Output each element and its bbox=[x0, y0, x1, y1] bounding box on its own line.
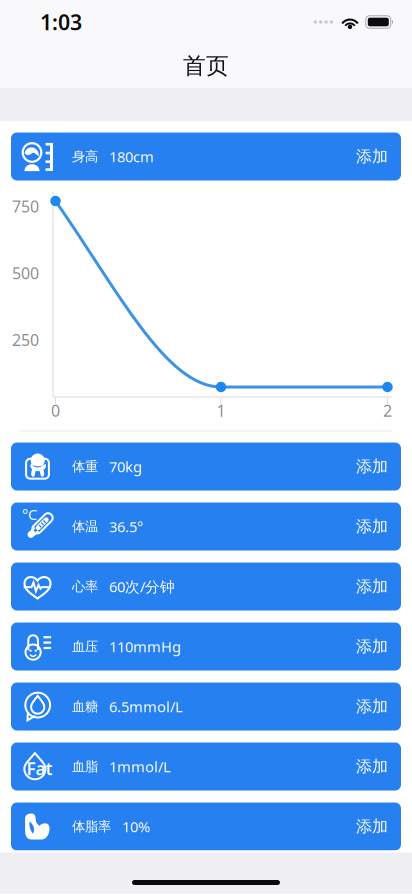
staticText: 身高 bbox=[72, 148, 98, 165]
staticText: 血脂 bbox=[72, 758, 98, 775]
staticText: 心率 bbox=[72, 578, 98, 595]
button[interactable]: °C bbox=[11, 502, 401, 550]
staticText: 10% bbox=[122, 817, 150, 836]
staticText: 血糖 bbox=[72, 698, 98, 715]
staticText: 1 bbox=[216, 400, 225, 421]
button[interactable]: 心率 bbox=[11, 562, 401, 610]
staticText: 110mmHg bbox=[109, 637, 181, 656]
staticText: 添加 bbox=[356, 577, 388, 596]
button[interactable]: 血糖 bbox=[11, 682, 401, 730]
staticText: 1:03 bbox=[40, 8, 82, 36]
button[interactable]: Fat bbox=[11, 742, 401, 790]
staticText: 体脂率 bbox=[72, 818, 111, 835]
staticText: 体重 bbox=[72, 458, 98, 475]
staticText: 体温 bbox=[72, 518, 98, 535]
staticText: 添加 bbox=[356, 697, 388, 716]
staticText: Fat bbox=[26, 757, 52, 780]
button[interactable]: 身高 bbox=[11, 132, 401, 180]
staticText: 70kg bbox=[109, 457, 142, 476]
button[interactable]: 体重 bbox=[11, 442, 401, 490]
staticText: 500 bbox=[12, 262, 39, 284]
staticText: 60次/分钟 bbox=[109, 577, 175, 596]
staticText: 添加 bbox=[356, 457, 388, 476]
staticText: 750 bbox=[12, 196, 39, 217]
staticText: 添加 bbox=[356, 757, 388, 776]
staticText: 0 bbox=[51, 400, 60, 421]
staticText: 添加 bbox=[356, 517, 388, 536]
staticText: 首页 bbox=[183, 52, 229, 80]
staticText: 6.5mmol/L bbox=[109, 697, 183, 716]
staticText: 180cm bbox=[109, 147, 154, 166]
staticText: 1mmol/L bbox=[109, 757, 171, 776]
staticText: 36.5° bbox=[109, 517, 143, 536]
button[interactable]: 血压 bbox=[11, 622, 401, 670]
staticText: 添加 bbox=[356, 817, 388, 836]
staticText: 250 bbox=[12, 329, 39, 350]
staticText: 2 bbox=[383, 400, 392, 421]
button[interactable]: 体脂率 bbox=[11, 802, 401, 850]
staticText: 添加 bbox=[356, 637, 388, 656]
staticText: 血压 bbox=[72, 638, 98, 655]
staticText: °C bbox=[22, 504, 37, 524]
staticText: 添加 bbox=[356, 147, 388, 166]
